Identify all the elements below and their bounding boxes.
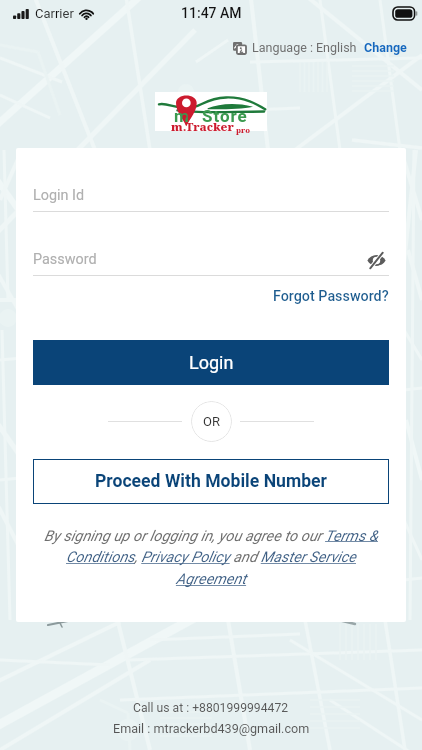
button[interactable]: Change (364, 40, 407, 55)
staticText: pro (236, 125, 251, 135)
staticText: Login Id (33, 187, 85, 204)
staticText: Login (189, 352, 234, 373)
staticText: m.Tracker (171, 119, 234, 135)
button[interactable]: Proceed With Mobile Number (33, 459, 389, 504)
button[interactable]: Show password (363, 247, 389, 273)
button[interactable]: Forgot Password? (273, 288, 389, 305)
staticText: Call us at : +8801999994472 (133, 701, 289, 715)
staticText: m (174, 106, 190, 126)
staticText: Change (364, 40, 407, 55)
staticText: Carrier (35, 6, 74, 21)
staticText: Proceed With Mobile Number (95, 471, 328, 492)
staticText: 11:47 AM (181, 5, 242, 21)
staticText: Email : mtrackerbd439@gmail.com (113, 721, 310, 736)
staticText: OR (203, 414, 220, 429)
button[interactable]: Login (33, 340, 389, 385)
staticText: Forgot Password? (273, 288, 389, 305)
staticText: By signing up or logging in, you agree t… (34, 527, 388, 588)
staticText: Store (202, 106, 248, 126)
button[interactable]: Login Id (33, 182, 389, 212)
staticText: Password (33, 251, 97, 268)
staticText: Language : English (252, 40, 357, 55)
